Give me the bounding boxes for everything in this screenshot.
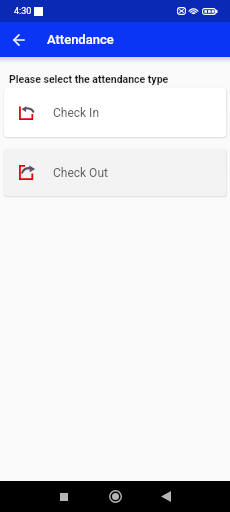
staticText: Attendance	[47, 32, 114, 47]
staticText: Check Out	[53, 166, 108, 180]
button[interactable]: Check In	[4, 88, 226, 137]
button[interactable]: Recents	[47, 481, 81, 512]
button[interactable]: Home	[98, 481, 132, 512]
button[interactable]: Back	[8, 29, 29, 50]
staticText: Please select the attendance type	[9, 73, 169, 85]
button[interactable]: Back	[149, 481, 183, 512]
staticText: Check In	[53, 106, 100, 120]
button[interactable]: Check Out	[4, 149, 226, 196]
staticText: 4:30	[14, 6, 32, 17]
